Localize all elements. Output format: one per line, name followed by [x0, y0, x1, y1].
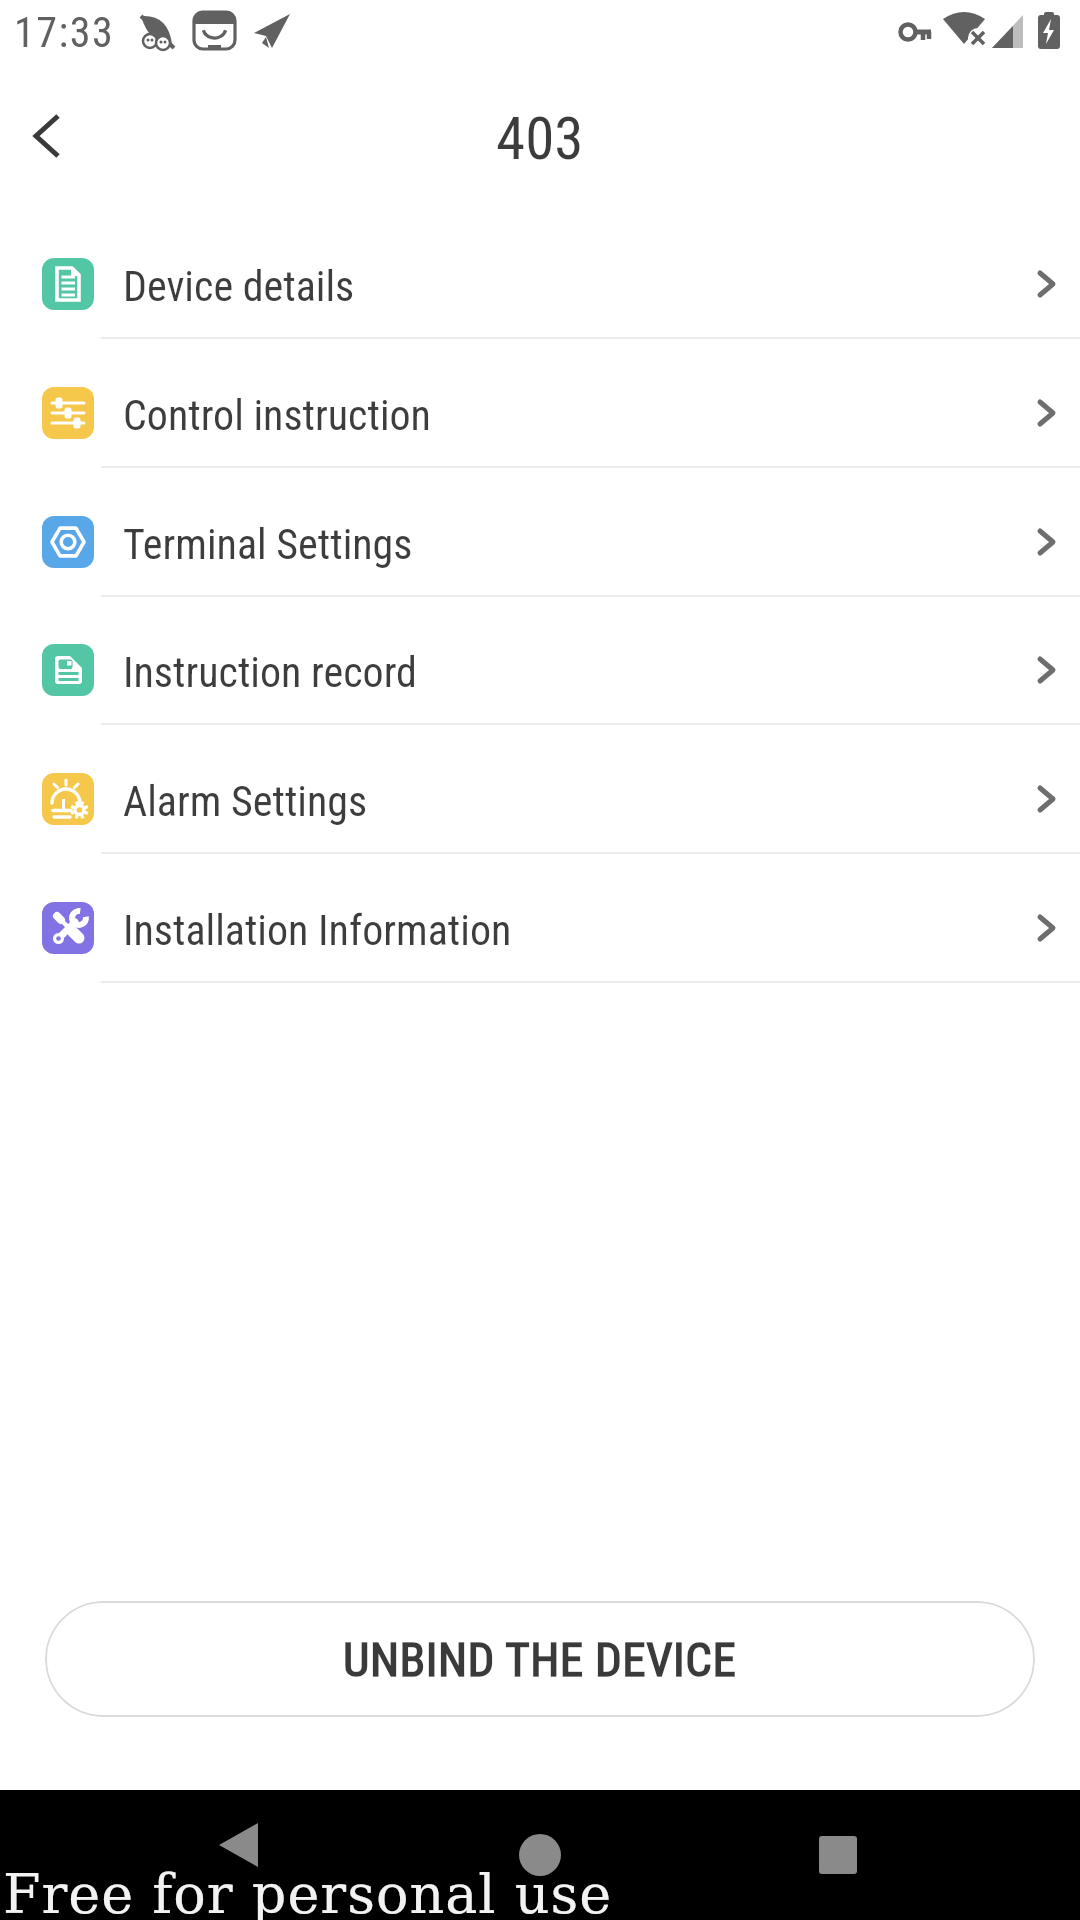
staticText: 403: [496, 104, 584, 173]
staticText: 17:33: [14, 8, 115, 57]
button[interactable]: [177, 1795, 297, 1915]
staticText: Free for personal use: [3, 1863, 613, 1920]
staticText: Terminal Settings: [123, 520, 413, 569]
staticText: Device details: [123, 262, 355, 311]
button[interactable]: Installation Information: [0, 864, 1080, 993]
staticText: Alarm Settings: [123, 777, 368, 826]
staticText: Instruction record: [123, 648, 417, 697]
button[interactable]: Control instruction: [0, 349, 1080, 478]
button[interactable]: Terminal Settings: [0, 478, 1080, 607]
staticText: UNBIND THE DEVICE: [343, 1632, 737, 1687]
staticText: Installation Information: [123, 906, 512, 955]
button[interactable]: Instruction record: [0, 606, 1080, 735]
button[interactable]: Alarm Settings: [0, 735, 1080, 864]
button[interactable]: [778, 1795, 898, 1915]
staticText: Control instruction: [123, 391, 431, 440]
button[interactable]: [480, 1795, 600, 1915]
button[interactable]: UNBIND THE DEVICE: [45, 1601, 1035, 1717]
button[interactable]: [16, 96, 100, 180]
button[interactable]: Device details: [0, 220, 1080, 349]
